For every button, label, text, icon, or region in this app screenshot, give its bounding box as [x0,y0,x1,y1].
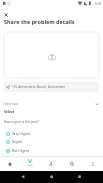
button[interactable]: 10L Amsterdam-Noord, Amsterdam [4,82,99,92]
button[interactable]: Volunteer [40,157,61,172]
button[interactable]: Profile [82,157,103,172]
staticText: Share the problem details [4,18,75,25]
button[interactable]: Select issue [4,99,99,108]
button[interactable]: Not Urgent [6,146,52,155]
staticText: Urgent [12,140,23,144]
button[interactable]: Very Urgent [6,129,52,138]
button[interactable]: Close [2,11,10,19]
button[interactable]: Add photo [4,32,99,78]
staticText: 9:30 [95,2,102,6]
button[interactable]: Messages [61,157,82,172]
staticText: Help [27,163,33,166]
staticText: 10L Amsterdam-Noord, Amsterdam [12,85,66,89]
button[interactable]: Home [0,157,20,172]
staticText: Select issue [4,102,19,106]
button[interactable]: Urgent [6,137,52,146]
staticText: Not Urgent [12,149,29,153]
staticText: Very Urgent [12,132,30,136]
staticText: Select [4,109,15,114]
staticText: How urgent is this post? [4,120,39,124]
button[interactable]: Help [20,157,40,172]
